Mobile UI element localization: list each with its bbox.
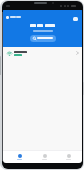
- button[interactable]: [30, 35, 56, 42]
- button[interactable]: [32, 151, 56, 163]
- button[interactable]: [3, 47, 82, 59]
- button[interactable]: [56, 151, 80, 163]
- button[interactable]: [7, 151, 32, 163]
- button[interactable]: [72, 16, 79, 22]
